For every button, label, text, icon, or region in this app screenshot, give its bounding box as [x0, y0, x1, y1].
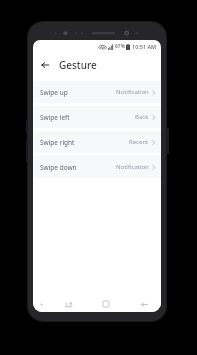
button[interactable]: Swipe up — [33, 81, 161, 103]
staticText: 67% — [115, 43, 125, 50]
staticText: Gesture — [59, 58, 97, 72]
button[interactable]: Menu indicator — [38, 301, 44, 307]
staticText: Swipe up — [40, 88, 68, 97]
button[interactable]: Swipe right — [33, 131, 161, 153]
staticText: Notification — [116, 163, 149, 171]
staticText: Notification — [116, 88, 149, 96]
staticText: Swipe left — [40, 113, 70, 122]
button[interactable]: Swipe left — [33, 106, 161, 128]
staticText: Recent — [129, 138, 149, 146]
staticText: Swipe right — [40, 138, 75, 147]
button[interactable]: Home — [99, 297, 113, 311]
staticText: Swipe down — [40, 163, 77, 172]
button[interactable]: Recents — [61, 297, 75, 311]
button[interactable]: Back — [137, 297, 151, 311]
staticText: Back — [135, 113, 149, 121]
button[interactable]: Back — [38, 58, 52, 72]
staticText: 10:51 AM — [132, 43, 157, 50]
button[interactable]: Swipe down — [33, 156, 161, 178]
